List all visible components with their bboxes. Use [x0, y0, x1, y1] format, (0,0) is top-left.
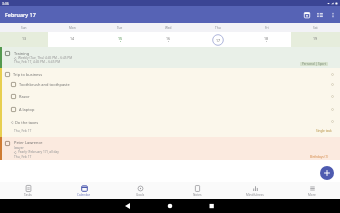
button[interactable]: More options — [326, 8, 339, 21]
staticText: 16 — [166, 36, 171, 41]
button[interactable]: 18 — [242, 32, 291, 47]
staticText: 15 — [118, 36, 123, 41]
staticText: Birthdays (1) — [310, 155, 329, 159]
staticText: Do the taxes — [15, 120, 39, 125]
staticText: Sat — [313, 26, 318, 30]
staticText: 17 — [216, 38, 221, 43]
staticText: Trip to business — [13, 72, 43, 77]
staticText: February 17 — [5, 11, 36, 18]
staticText: Mon — [69, 26, 76, 30]
staticText: Notes — [193, 193, 202, 197]
staticText: Sun — [21, 26, 27, 30]
staticText: Thu, Feb 17 — [14, 155, 32, 159]
button[interactable]: Mindfulness — [226, 182, 283, 199]
staticText: Fri — [265, 26, 269, 30]
button[interactable]: Go to today — [300, 8, 313, 21]
staticText: A laptop — [19, 107, 35, 112]
button[interactable]: 15 — [96, 32, 144, 47]
button[interactable]: A laptop — [0, 103, 340, 115]
staticText: Calendar — [77, 193, 91, 197]
staticText: Yearly (February 17), all day — [18, 150, 59, 154]
staticText: Wed — [165, 26, 172, 30]
staticText: 18 — [264, 36, 269, 41]
button[interactable]: Training — [0, 47, 340, 68]
staticText: Peter Lawrence — [14, 140, 43, 145]
button[interactable]: Goals — [112, 182, 169, 199]
staticText: Weekly (Tue, Thu) 4:45 PM – 6:45 PM — [18, 56, 73, 60]
button[interactable]: Trip to business — [0, 68, 340, 80]
staticText: 13 — [22, 36, 27, 41]
button[interactable]: 13 — [0, 32, 48, 47]
button[interactable]: Calendar — [56, 182, 112, 199]
staticText: Single task — [316, 129, 332, 133]
staticText: Goals — [136, 193, 145, 197]
button[interactable]: Razor — [0, 89, 340, 103]
staticText: Tue — [117, 26, 123, 30]
button[interactable]: 16 — [144, 32, 193, 47]
staticText: Toothbrush and toothpaste — [19, 82, 70, 87]
staticText: More — [308, 193, 316, 197]
staticText: Personal | Sport — [302, 62, 326, 66]
staticText: 19 — [313, 36, 318, 41]
button[interactable]: Change view — [313, 8, 326, 21]
button[interactable]: Toothbrush and toothpaste — [0, 80, 340, 89]
button[interactable]: Peter Lawrence — [0, 137, 340, 160]
button[interactable]: 17 — [193, 32, 242, 47]
button[interactable]: More — [283, 182, 340, 199]
staticText: Mindfulness — [246, 193, 264, 197]
staticText: lawyer — [14, 146, 24, 150]
staticText: Thu, Feb 17 — [14, 129, 32, 133]
staticText: Razor — [19, 94, 30, 99]
staticText: 14 — [70, 36, 75, 41]
staticText: Thu — [215, 26, 221, 30]
button[interactable]: Notes — [169, 182, 226, 199]
staticText: Training — [14, 51, 30, 56]
staticText: Thu, Feb 17, 4:45 PM – 6:45 PM — [14, 60, 61, 64]
button[interactable]: 19 — [291, 32, 340, 47]
button[interactable]: Tasks — [0, 182, 56, 199]
staticText: 3:36 — [2, 1, 9, 6]
staticText: Tasks — [24, 193, 32, 197]
button[interactable]: 14 — [48, 32, 96, 47]
button[interactable]: Create new event — [320, 166, 334, 180]
